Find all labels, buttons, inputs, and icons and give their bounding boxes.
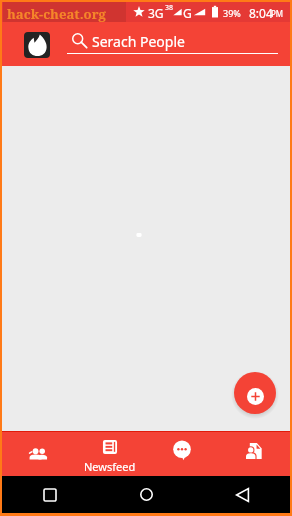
- staticText: G: [183, 5, 192, 21]
- button[interactable]: Newsfeed: [74, 432, 146, 476]
- button[interactable]: Chat: [146, 432, 218, 476]
- staticText: 38: [165, 3, 174, 13]
- staticText: Serach People: [92, 32, 185, 51]
- staticText: Newsfeed: [84, 459, 136, 474]
- button[interactable]: Profile: [218, 432, 290, 476]
- button[interactable]: Serach People: [65, 22, 292, 41]
- staticText: 39%: [223, 7, 241, 19]
- button[interactable]: App logo: [24, 32, 50, 58]
- staticText: 3G: [148, 5, 164, 21]
- staticText: 8:04: [249, 5, 273, 21]
- button[interactable]: Recents: [36, 481, 64, 509]
- button[interactable]: Back: [228, 480, 257, 510]
- button[interactable]: Add: [234, 372, 276, 414]
- button[interactable]: People: [2, 432, 74, 476]
- staticText: hack-cheat.org: [7, 5, 106, 23]
- staticText: PM: [271, 8, 284, 19]
- button[interactable]: Home: [132, 480, 161, 509]
